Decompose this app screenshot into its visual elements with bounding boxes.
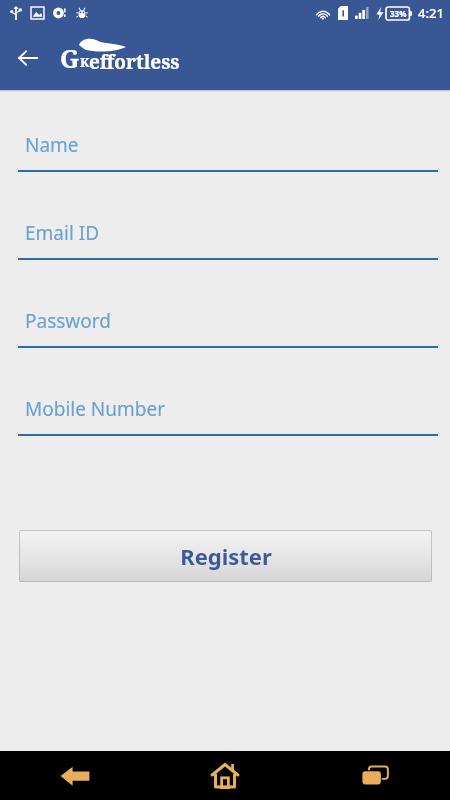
button[interactable]: Register (19, 530, 432, 582)
staticText: effortless (89, 49, 180, 75)
button[interactable]: Back (0, 751, 150, 800)
staticText: Email ID (25, 220, 100, 246)
button[interactable]: Name (0, 120, 450, 208)
staticText: Password (25, 308, 111, 334)
staticText: 33% (390, 8, 407, 19)
staticText: 4:21 (418, 4, 444, 22)
staticText: K (80, 53, 90, 71)
staticText: Mobile Number (25, 396, 166, 422)
staticText: Register (180, 541, 272, 571)
button[interactable]: Home (150, 751, 300, 800)
button[interactable]: Recent apps (300, 751, 450, 800)
button[interactable]: Password (0, 296, 450, 384)
button[interactable]: Mobile Number (0, 384, 450, 472)
staticText: Name (25, 132, 79, 158)
button[interactable]: Back (8, 38, 48, 78)
button[interactable]: Email ID (0, 208, 450, 296)
staticText: G (60, 41, 80, 75)
